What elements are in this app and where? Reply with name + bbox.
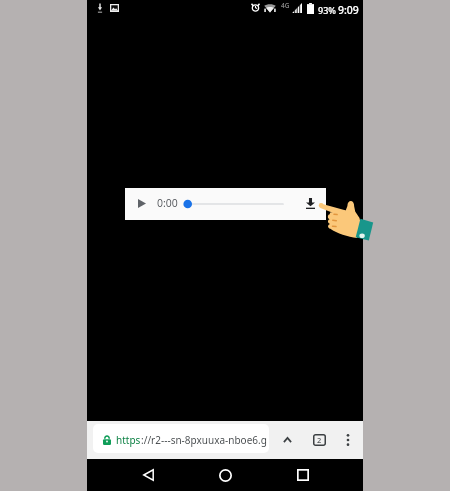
- button[interactable]: Back: [124, 459, 172, 491]
- staticText: 9:09: [338, 3, 359, 17]
- button[interactable]: Home: [201, 459, 249, 491]
- staticText: 4G: [281, 1, 290, 10]
- button[interactable]: More options: [334, 426, 362, 454]
- button[interactable]: Recent apps: [279, 459, 327, 491]
- staticText: 93%: [318, 4, 336, 16]
- staticText: ://r2---sn-8pxuuxa-nboe6.g: [141, 433, 267, 447]
- button[interactable]: Switch tabs: [305, 426, 333, 454]
- button[interactable]: 0:00: [125, 188, 326, 220]
- staticText: 0:00: [157, 196, 178, 210]
- staticText: 2: [317, 435, 322, 445]
- staticText: https: [116, 433, 141, 447]
- button[interactable]: https: [93, 424, 269, 453]
- button[interactable]: Expand toolbar: [273, 426, 301, 454]
